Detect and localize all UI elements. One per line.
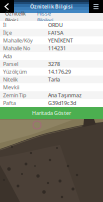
staticText: Öznitelik Bilgisi — [30, 3, 73, 10]
staticText: İlçe — [3, 29, 12, 36]
staticText: 3278 — [48, 60, 60, 67]
button[interactable]: Hisse Bilgileri — [31, 13, 59, 21]
button[interactable]: Geri — [0, 0, 14, 13]
button[interactable]: Haritada Göster — [0, 107, 103, 119]
staticText: Mahalle/Köy — [3, 37, 33, 44]
staticText: Haritada Göster — [32, 109, 71, 117]
staticText: Yüzölçüm — [3, 68, 27, 75]
staticText: Zemin Tip — [3, 92, 26, 99]
staticText: İl — [3, 21, 6, 28]
staticText: 14.176,29 — [48, 68, 71, 75]
staticText: G39d19c3d — [48, 99, 76, 106]
staticText: 114231 — [48, 45, 66, 52]
staticText: Pafta — [3, 99, 16, 106]
staticText: Tarla — [48, 76, 60, 83]
staticText: Hisse Bilgileri — [37, 10, 53, 24]
staticText: Parsel — [3, 60, 18, 67]
staticText: Ana Taşınmaz — [48, 92, 82, 99]
staticText: Nitelik — [3, 76, 18, 83]
button[interactable]: Bilgi — [89, 0, 103, 13]
staticText: Mahalle No — [3, 45, 30, 52]
staticText: FATSA — [48, 29, 63, 36]
staticText: YENİKENT — [48, 37, 73, 44]
staticText: Ada — [3, 53, 12, 60]
staticText: ORDU — [48, 21, 63, 28]
staticText: Öznitelik Bilgisi — [5, 10, 26, 24]
staticText: Mevkii — [3, 84, 19, 91]
button[interactable]: Öznitelik Bilgisi — [0, 13, 31, 21]
